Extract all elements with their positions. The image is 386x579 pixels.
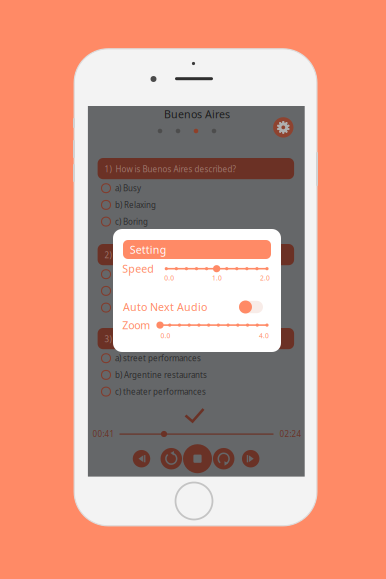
button[interactable]: c) Boring [101,214,291,229]
button[interactable]: c) Take a nap [101,300,291,315]
staticText: 2.0 [260,273,270,282]
staticText: 3) What is famous there? [104,334,198,344]
button[interactable]: Auto Next Audio [239,300,263,313]
staticText: a) street performances [115,353,201,363]
staticText: Auto Next Audio [123,300,207,314]
button[interactable]: Rewind 5 seconds [161,448,182,469]
button[interactable]: Stop [183,444,212,473]
staticText: 02:24 [279,429,301,439]
staticText: c) Take a nap [115,302,162,313]
staticText: c) theater performances [115,386,206,397]
button[interactable]: Settings [273,117,293,138]
staticText: 4.0 [259,331,269,340]
button[interactable]: b) Argentine restaurants [101,367,291,382]
staticText: 0.0 [160,331,170,340]
button[interactable]: Setting [123,240,271,259]
staticText: 2) What can you do in Buenos Aires? [104,250,241,260]
button[interactable]: Forward 5 seconds [213,448,234,469]
button[interactable]: a) Sleep [101,267,291,282]
button[interactable]: b) Relaxing [101,197,291,212]
button[interactable]: Next [242,450,259,467]
staticText: Setting [130,242,167,257]
button[interactable]: b) Dance tango [101,283,291,298]
button[interactable]: a) street performances [101,351,291,366]
staticText: b) Relaxing [115,200,156,210]
staticText: 00:41 [92,429,114,439]
staticText: Buenos Aires [164,107,230,121]
staticText: Zoom [122,318,150,332]
staticText: a) Sleep [115,269,144,279]
button[interactable]: Previous [133,450,150,467]
staticText: 0.0 [164,273,174,282]
button[interactable]: c) theater performances [101,384,291,399]
staticText: 1.0 [212,273,222,282]
staticText: Speed [122,262,154,276]
staticText: 1) How is Buenos Aires described? [104,164,235,174]
button[interactable]: a) Busy [101,181,291,196]
staticText: c) Boring [115,216,148,227]
staticText: a) Busy [115,183,141,193]
staticText: b) Argentine restaurants [115,370,207,380]
